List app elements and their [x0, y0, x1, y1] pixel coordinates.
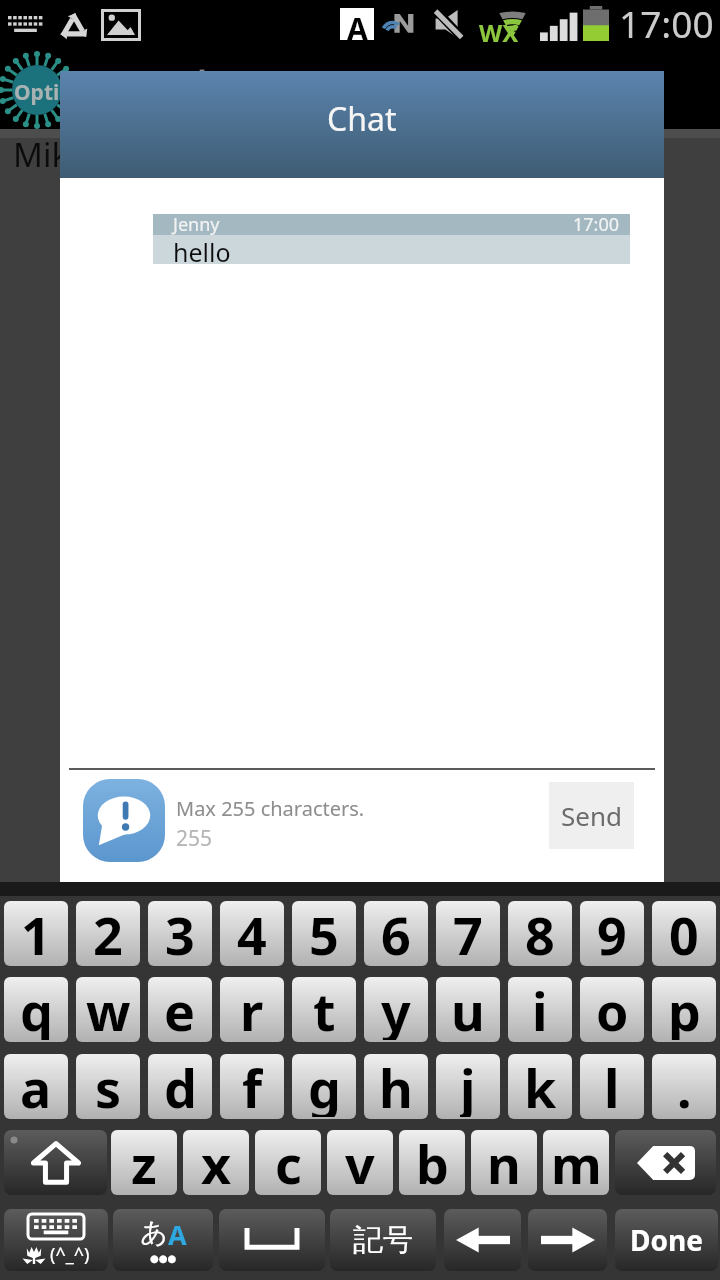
staticText: 7 [453, 901, 483, 964]
button[interactable]: v [327, 1130, 393, 1195]
staticText: 2 [93, 901, 123, 964]
button[interactable]: 9 [580, 901, 644, 966]
button[interactable]: m [543, 1130, 609, 1195]
staticText: 5 [309, 901, 339, 964]
button[interactable]: u [436, 977, 500, 1042]
button[interactable]: 1 [4, 901, 68, 966]
staticText: 17:00 [573, 212, 620, 237]
button[interactable]: Input language [113, 1209, 213, 1271]
button[interactable]: g [292, 1054, 356, 1119]
button[interactable]: e [148, 977, 212, 1042]
staticText: h [379, 1054, 413, 1117]
button[interactable]: 0 [652, 901, 716, 966]
staticText: Send [561, 798, 622, 833]
staticText: 0 [669, 901, 699, 964]
button[interactable]: o [580, 977, 644, 1042]
button[interactable]: n [471, 1130, 537, 1195]
button[interactable]: Done [615, 1209, 718, 1271]
staticText: q [20, 977, 53, 1040]
button[interactable]: l [580, 1054, 644, 1119]
staticText: Done [630, 1221, 703, 1259]
button[interactable]: Keyboard settings [4, 1209, 108, 1271]
button[interactable]: q [4, 977, 68, 1042]
button[interactable]: d [148, 1054, 212, 1119]
button[interactable]: Left [444, 1209, 521, 1271]
staticText: d [164, 1054, 197, 1117]
button[interactable]: Send [549, 782, 634, 849]
staticText: n [487, 1130, 521, 1193]
button[interactable]: k [508, 1054, 572, 1119]
button[interactable]: Right [528, 1209, 607, 1271]
staticText: 8 [525, 901, 555, 964]
button[interactable]: . [652, 1054, 716, 1119]
staticText: 4 [237, 901, 267, 964]
button[interactable]: b [399, 1130, 465, 1195]
staticText: . [677, 1054, 692, 1117]
button[interactable]: y [364, 977, 428, 1042]
staticText: l [604, 1054, 620, 1117]
button[interactable]: j [436, 1054, 500, 1119]
staticText: 1 [21, 901, 51, 964]
button[interactable]: 6 [364, 901, 428, 966]
button[interactable]: r [220, 977, 284, 1042]
button[interactable]: Space [219, 1209, 325, 1271]
staticText: Goodoo [76, 54, 272, 125]
staticText: A [347, 8, 368, 40]
staticText: 17:00 [619, 0, 714, 44]
staticText: ●●● [150, 1253, 177, 1265]
staticText: e [164, 977, 196, 1040]
staticText: Jenny [173, 212, 220, 237]
staticText: j [460, 1054, 476, 1117]
button[interactable]: s [76, 1054, 140, 1119]
button[interactable]: c [255, 1130, 321, 1195]
staticText: (^_^) [50, 1242, 90, 1267]
staticText: v [345, 1130, 375, 1193]
staticText: 6 [381, 901, 411, 964]
button[interactable]: p [652, 977, 716, 1042]
staticText: g [308, 1054, 341, 1117]
button[interactable]: w [76, 977, 140, 1042]
button[interactable]: 2 [76, 901, 140, 966]
staticText: k [524, 1054, 557, 1117]
staticText: y [381, 977, 411, 1040]
staticText: WX [479, 16, 519, 49]
staticText: 3 [165, 901, 195, 964]
button[interactable]: Shift [4, 1130, 107, 1195]
staticText: 255 [176, 824, 213, 853]
staticText: hello [173, 235, 231, 269]
staticText: Mik [13, 132, 70, 177]
staticText: f [242, 1054, 263, 1117]
staticText: Chat [327, 97, 397, 141]
button[interactable]: i [508, 977, 572, 1042]
staticText: Optia [14, 78, 72, 107]
button[interactable]: t [292, 977, 356, 1042]
staticText: o [596, 977, 629, 1040]
staticText: t [313, 977, 336, 1040]
staticText: x [201, 1130, 232, 1193]
staticText: m [551, 1130, 602, 1193]
staticText: Max 255 characters. [176, 795, 365, 822]
staticText: 9 [597, 901, 627, 964]
staticText: あ [140, 1216, 168, 1250]
button[interactable]: Jenny [153, 214, 630, 264]
staticText: 記号 [353, 1221, 413, 1259]
button[interactable]: z [111, 1130, 177, 1195]
button[interactable]: 3 [148, 901, 212, 966]
staticText: w [86, 977, 131, 1040]
button[interactable]: x [183, 1130, 249, 1195]
button[interactable]: a [4, 1054, 68, 1119]
staticText: r [240, 977, 264, 1040]
staticText: A [168, 1216, 187, 1253]
button[interactable]: Symbols [330, 1209, 436, 1271]
button[interactable]: h [364, 1054, 428, 1119]
button[interactable]: 4 [220, 901, 284, 966]
staticText: p [668, 977, 701, 1040]
staticText: c [275, 1130, 302, 1193]
staticText: z [131, 1130, 157, 1193]
button[interactable]: f [220, 1054, 284, 1119]
button[interactable]: Backspace [615, 1130, 716, 1195]
button[interactable]: 5 [292, 901, 356, 966]
button[interactable]: 7 [436, 901, 500, 966]
staticText: s [95, 1054, 122, 1117]
button[interactable]: 8 [508, 901, 572, 966]
